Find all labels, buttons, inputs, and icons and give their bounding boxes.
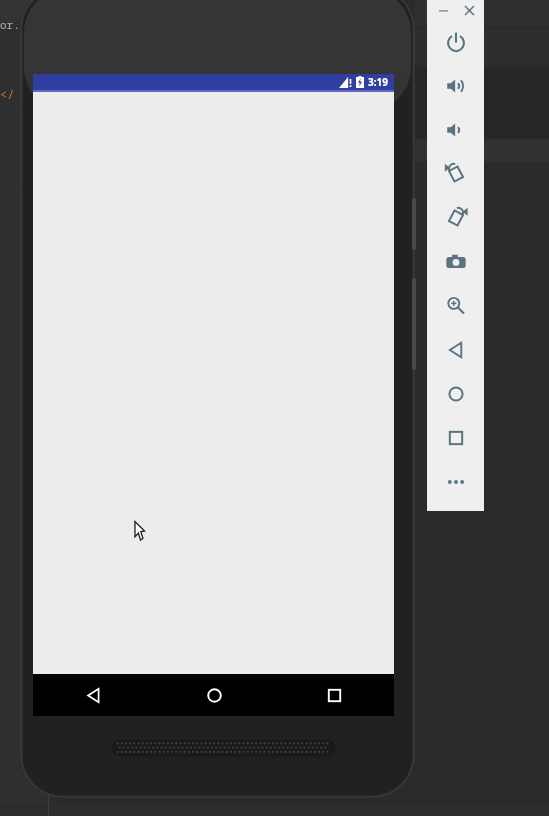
button[interactable]: Back <box>427 328 484 372</box>
button[interactable]: Rotate right <box>427 196 484 240</box>
button[interactable]: Home <box>427 372 484 416</box>
button[interactable]: Home <box>154 674 274 716</box>
button[interactable]: Power <box>427 20 484 64</box>
button[interactable]: Recent apps <box>427 416 484 460</box>
button[interactable]: Take screenshot <box>427 240 484 284</box>
staticText: </ <box>0 86 15 102</box>
button[interactable]: Back <box>33 674 154 716</box>
button[interactable]: Rotate left <box>427 152 484 196</box>
button[interactable]: Volume up <box>427 64 484 108</box>
button[interactable]: Recent apps <box>274 674 394 716</box>
button[interactable]: Zoom <box>427 284 484 328</box>
button[interactable]: Volume down <box>427 108 484 152</box>
button[interactable]: Minimize <box>434 1 452 19</box>
button[interactable]: More <box>427 460 484 504</box>
staticText: or. <box>0 17 20 32</box>
button[interactable]: Close <box>460 1 478 19</box>
staticText: 3:19 <box>368 75 388 89</box>
